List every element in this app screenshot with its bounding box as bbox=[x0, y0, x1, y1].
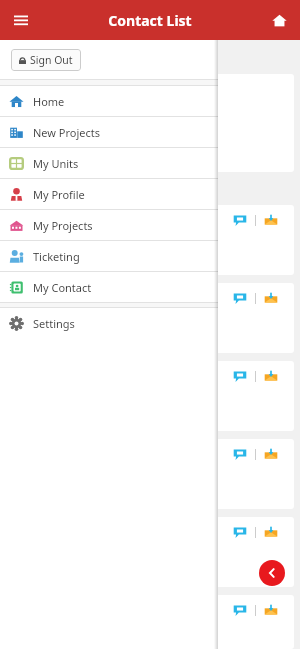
button[interactable]: Message bbox=[233, 369, 247, 383]
button[interactable]: My Projects bbox=[0, 210, 218, 240]
button[interactable]: Message bbox=[6, 439, 294, 509]
button[interactable]: Message bbox=[233, 603, 247, 617]
staticText: city.com bbox=[12, 314, 49, 327]
button[interactable]: Email bbox=[264, 525, 278, 539]
button[interactable]: Message bbox=[6, 205, 294, 275]
button[interactable]: Message bbox=[6, 361, 294, 431]
button[interactable]: Message bbox=[6, 517, 294, 587]
staticText: Sign Out bbox=[30, 53, 73, 67]
button[interactable]: Open navigation menu bbox=[8, 7, 34, 33]
staticText: Settings bbox=[33, 316, 75, 331]
button[interactable]: Message bbox=[233, 291, 247, 305]
staticText: My Profile bbox=[33, 187, 85, 202]
button[interactable]: Sign Out bbox=[11, 49, 81, 71]
button[interactable]: My Profile bbox=[0, 179, 218, 209]
staticText: Home bbox=[33, 94, 65, 109]
button[interactable]: Email bbox=[264, 291, 278, 305]
button[interactable]: Email bbox=[264, 213, 278, 227]
button[interactable]: Home bbox=[0, 86, 218, 116]
staticText: My Projects bbox=[33, 218, 93, 233]
button[interactable] bbox=[6, 74, 294, 172]
button[interactable]: Email bbox=[264, 369, 278, 383]
button[interactable]: Settings bbox=[0, 308, 218, 338]
staticText: My Contact bbox=[33, 280, 92, 295]
staticText: My Units bbox=[33, 156, 79, 171]
button[interactable]: Message bbox=[233, 447, 247, 461]
staticText: New Projects bbox=[33, 125, 101, 140]
button[interactable]: New Projects bbox=[0, 117, 218, 147]
staticText: Contact List bbox=[108, 11, 192, 30]
button[interactable]: My Units bbox=[0, 148, 218, 178]
button[interactable]: My Contact bbox=[0, 272, 218, 302]
button[interactable]: Message bbox=[233, 213, 247, 227]
button[interactable]: Message bbox=[233, 525, 247, 539]
button[interactable]: Message bbox=[6, 283, 294, 353]
button[interactable]: Home bbox=[266, 7, 292, 33]
button[interactable]: Message bbox=[6, 595, 294, 649]
button[interactable]: Ticketing bbox=[0, 241, 218, 271]
staticText: Ticketing bbox=[33, 249, 80, 264]
button[interactable]: Email bbox=[264, 603, 278, 617]
button[interactable]: Email bbox=[264, 447, 278, 461]
button[interactable]: Back bbox=[259, 560, 285, 586]
